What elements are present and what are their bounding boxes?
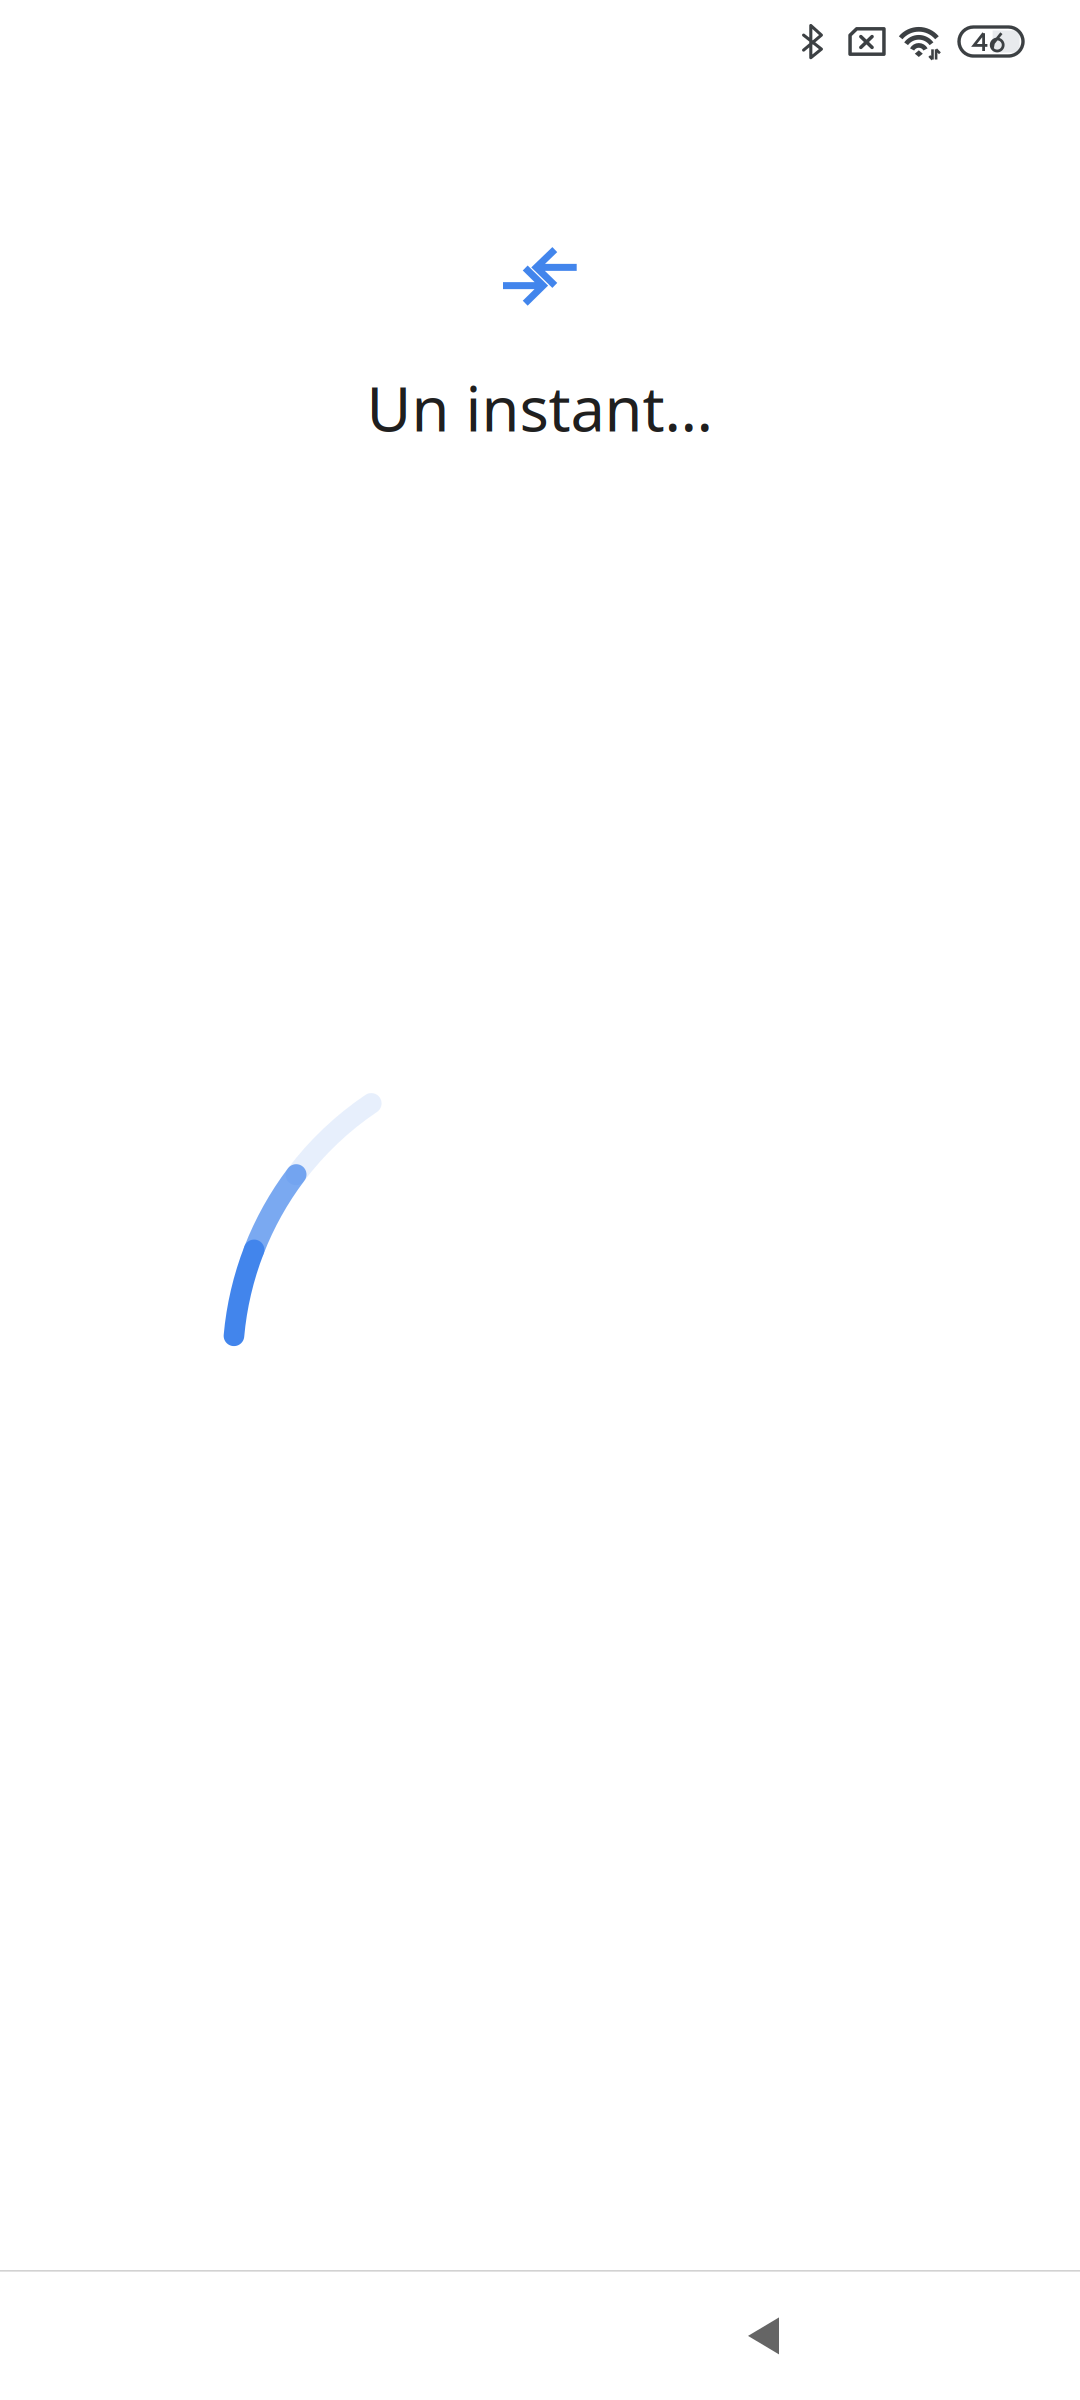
- button[interactable]: Back: [714, 2283, 813, 2388]
- staticText: Un instant…: [366, 367, 713, 448]
